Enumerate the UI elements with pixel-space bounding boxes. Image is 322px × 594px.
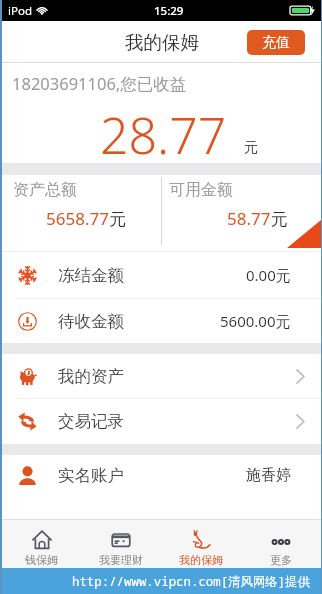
staticText: 0.00元 <box>246 265 291 285</box>
staticText: 我要理财 <box>99 553 143 567</box>
other: Invest <box>111 530 131 550</box>
staticText: 5600.00元 <box>220 311 291 331</box>
staticText: 5658.77元 <box>46 207 126 230</box>
staticText: 施香婷 <box>246 466 291 485</box>
button[interactable]: Invest <box>81 519 161 568</box>
staticText: 我的资产 <box>58 366 124 387</box>
staticText: 钱保姆 <box>25 553 58 567</box>
staticText: 更多 <box>270 553 292 567</box>
other: My nanny <box>191 530 211 550</box>
staticText: 我的保姆 <box>179 553 223 567</box>
button[interactable]: Pending amount <box>2 299 321 343</box>
staticText: 元 <box>244 139 258 157</box>
other: Frozen amount <box>18 266 37 285</box>
button[interactable]: More <box>241 519 321 568</box>
staticText: 58.77元 <box>227 207 288 230</box>
other: My assets <box>18 367 37 386</box>
button[interactable]: Transaction records <box>2 399 321 444</box>
staticText: 实名账户 <box>58 465 124 486</box>
other: Transaction records <box>18 412 37 431</box>
other: Verified account <box>18 466 37 485</box>
staticText: 15:29 <box>154 3 184 19</box>
staticText: 冻结金额 <box>58 265 124 286</box>
button[interactable]: Verified account <box>2 455 321 496</box>
staticText: 交易记录 <box>58 411 124 432</box>
button[interactable]: 充值 <box>247 30 305 55</box>
other: Home <box>32 530 52 550</box>
button[interactable]: My nanny <box>161 519 241 568</box>
staticText: 28.77 <box>100 101 227 163</box>
staticText: 充值 <box>262 34 290 52</box>
staticText: 可用金额 <box>169 180 233 200</box>
other: Pending amount <box>18 312 37 331</box>
staticText: 资产总额 <box>13 180 77 200</box>
button[interactable]: Frozen amount <box>2 252 321 298</box>
other: More <box>271 530 291 550</box>
staticText: 待收金额 <box>58 311 124 332</box>
staticText: 我的保姆 <box>125 31 199 54</box>
button[interactable]: My assets <box>2 354 321 398</box>
staticText: iPod <box>8 3 32 19</box>
staticText: http://www.vipcn.com[清风网络]提供 <box>72 573 310 590</box>
button[interactable]: Home <box>2 519 81 568</box>
staticText: 18203691106,您已收益 <box>12 72 187 95</box>
